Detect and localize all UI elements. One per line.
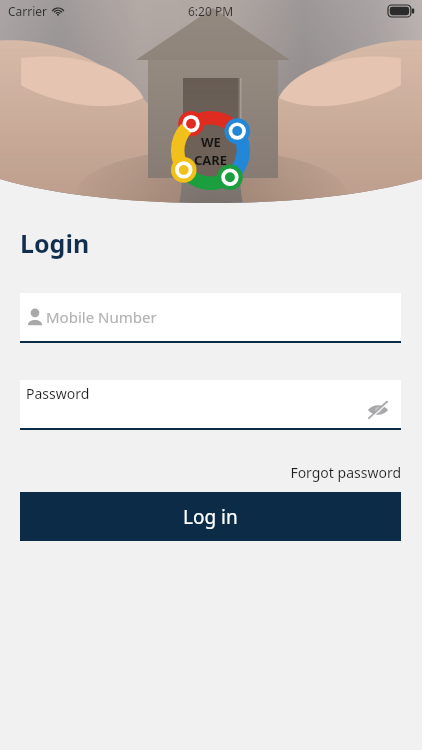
staticText: CARE xyxy=(194,151,228,169)
staticText: Carrier xyxy=(8,3,48,19)
button[interactable]: Password xyxy=(20,380,401,430)
button[interactable]: Show password xyxy=(365,397,391,423)
staticText: Mobile Number xyxy=(46,307,157,327)
staticText: Password xyxy=(26,384,90,403)
staticText: WE xyxy=(201,133,221,151)
button[interactable]: Log in xyxy=(20,492,401,541)
staticText: Forgot password xyxy=(271,463,401,482)
button[interactable]: Mobile Number xyxy=(20,293,401,343)
staticText: Login xyxy=(20,226,90,260)
staticText: Log in xyxy=(183,504,238,530)
staticText: 6:20 PM xyxy=(188,3,234,19)
button[interactable]: Forgot password xyxy=(271,463,401,482)
